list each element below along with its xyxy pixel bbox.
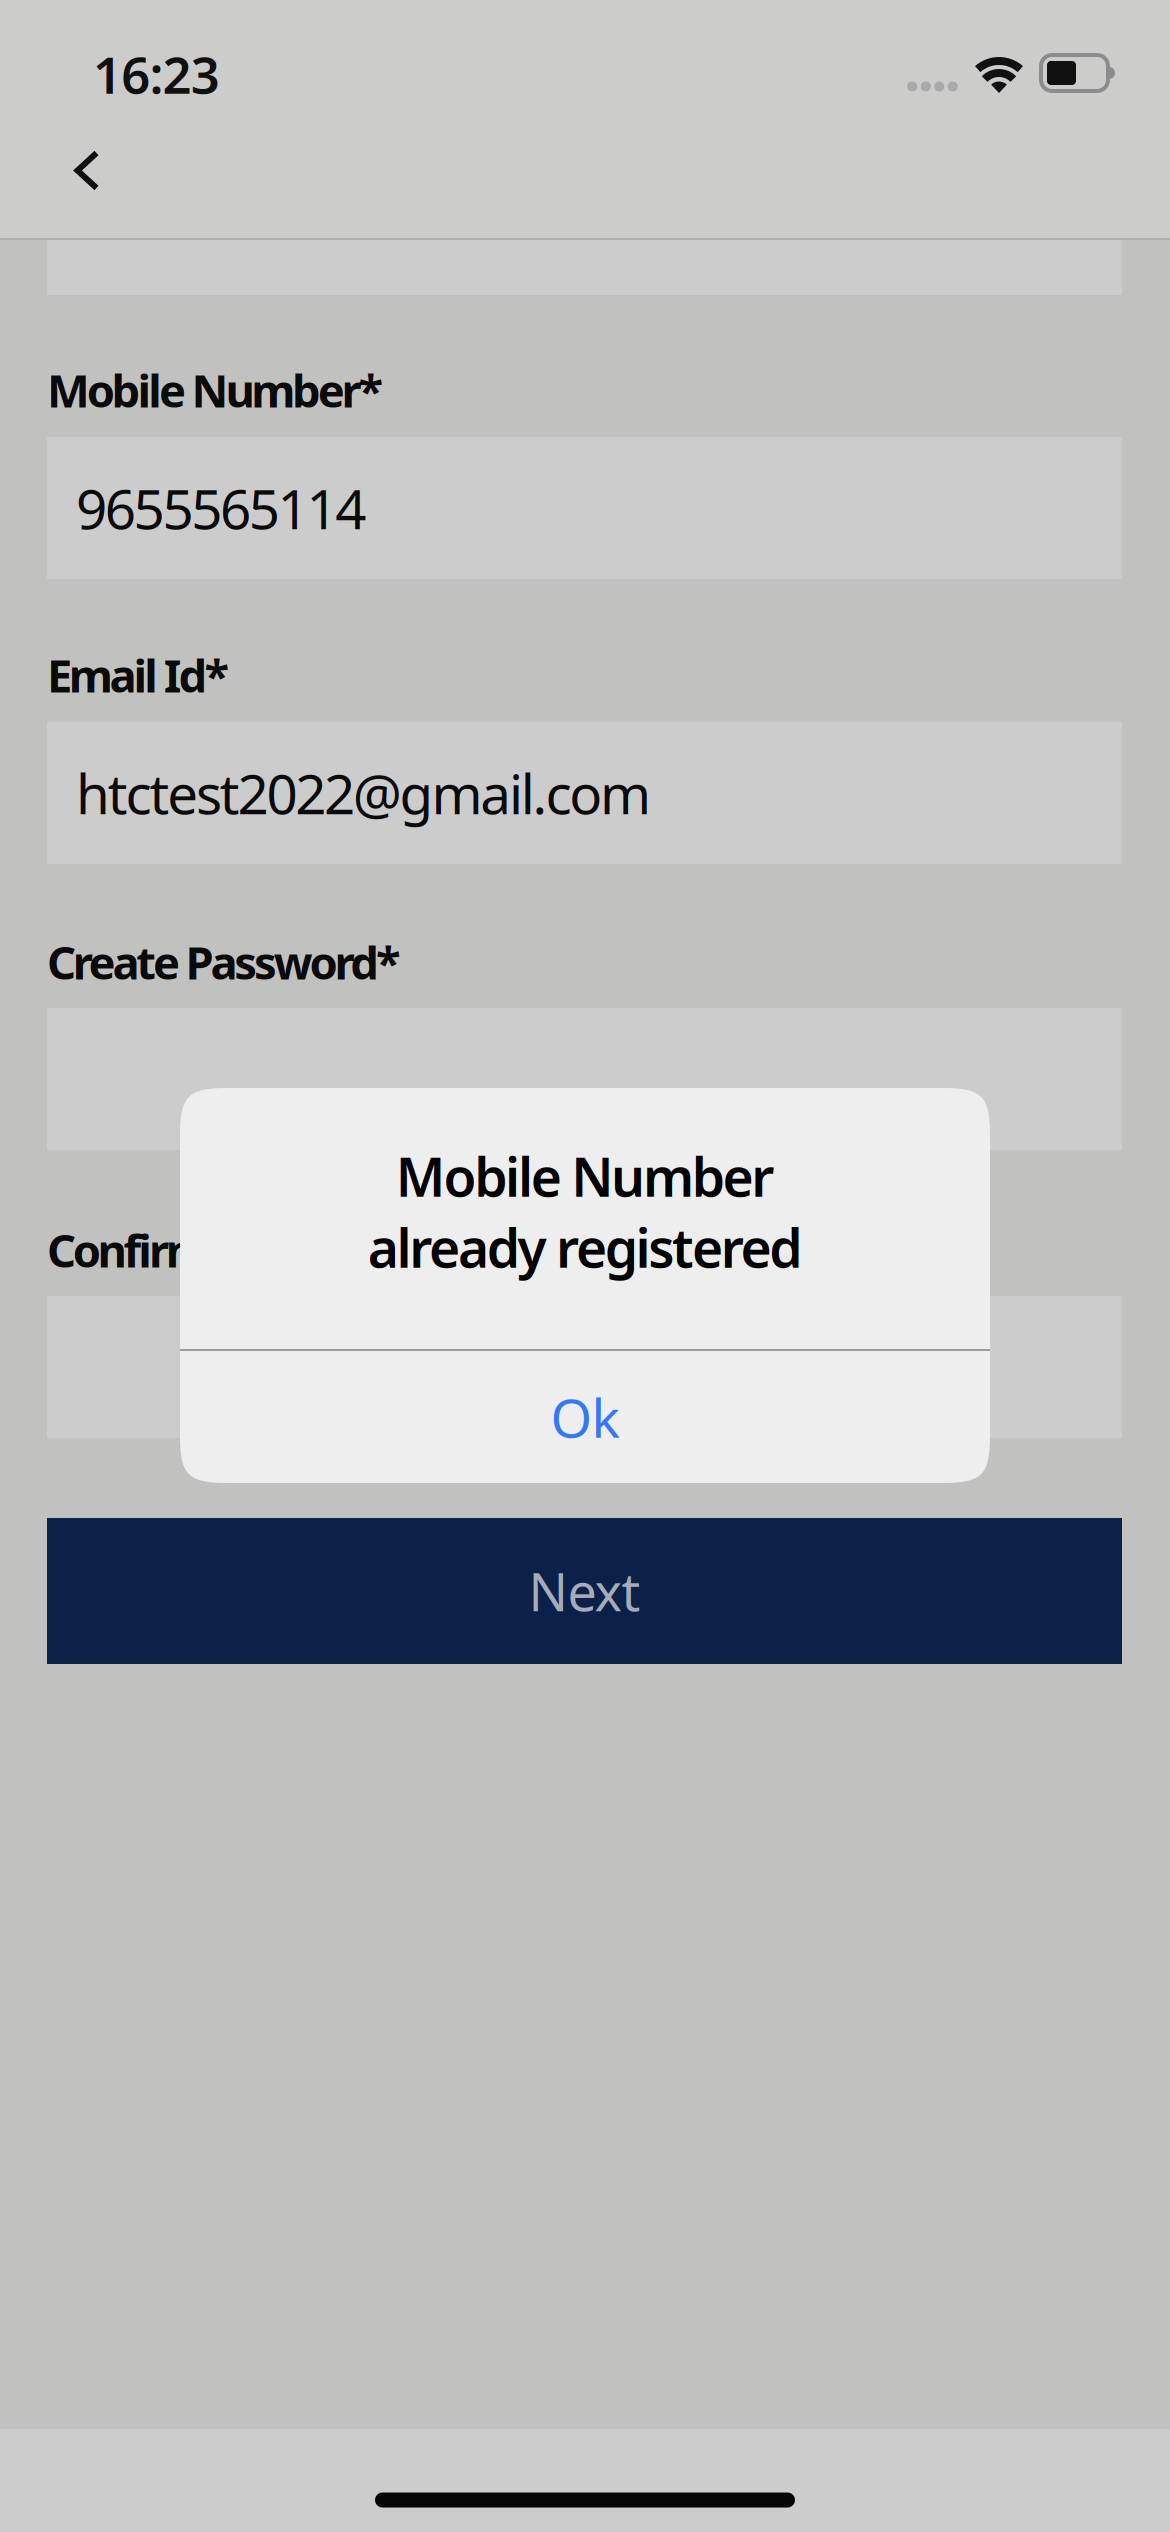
staticText: Mobile Number* — [47, 360, 383, 420]
button[interactable]: htctest2022@gmail.com — [47, 722, 1122, 864]
button[interactable]: Text field — [47, 1296, 1122, 1438]
staticText: htctest2022@gmail.com — [76, 757, 651, 829]
staticText: Email Id* — [47, 645, 229, 705]
staticText: 9655565114 — [76, 472, 366, 544]
staticText: already registered — [368, 1212, 802, 1282]
button[interactable]: Next — [47, 1518, 1122, 1664]
staticText: 16:23 — [93, 40, 220, 108]
button[interactable]: Ok — [180, 1351, 990, 1483]
button[interactable]: Text field — [47, 1008, 1122, 1150]
staticText: Mobile Number — [396, 1141, 774, 1211]
staticText: Create Password* — [47, 932, 401, 992]
staticText: Ok — [550, 1382, 620, 1452]
button[interactable]: 9655565114 — [47, 437, 1122, 579]
staticText: Next — [528, 1556, 640, 1626]
button[interactable]: Text field — [47, 239, 1122, 295]
button[interactable]: Back — [39, 117, 137, 227]
staticText: Confirm Password* — [47, 1220, 431, 1280]
